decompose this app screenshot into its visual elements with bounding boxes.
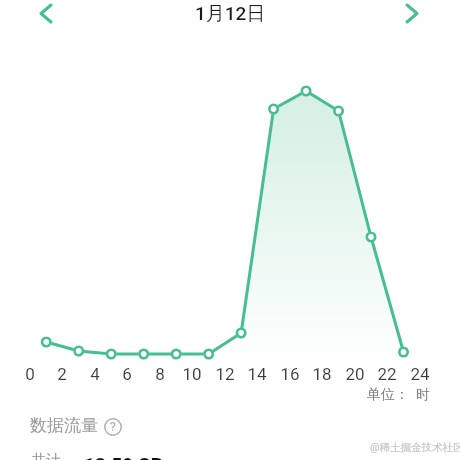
- staticText: 8: [155, 364, 165, 384]
- staticText: 单位： 时: [367, 386, 430, 404]
- button[interactable]: 数据流量: [30, 415, 118, 436]
- staticText: ?: [110, 420, 116, 434]
- staticText: 12: [215, 364, 235, 384]
- staticText: 0: [25, 364, 35, 384]
- button[interactable]: [394, 0, 430, 26]
- staticText: 4: [90, 364, 100, 384]
- staticText: 20: [345, 364, 365, 384]
- staticText: 1月12日: [195, 2, 266, 26]
- staticText: 共计: [31, 451, 61, 460]
- staticText: 13.59 GB: [84, 453, 163, 460]
- staticText: 10: [182, 364, 202, 384]
- staticText: 6: [122, 364, 132, 384]
- staticText: 2: [57, 364, 67, 384]
- button[interactable]: [28, 0, 64, 26]
- staticText: 22: [377, 364, 397, 384]
- staticText: 18: [312, 364, 332, 384]
- staticText: 24: [410, 364, 430, 384]
- staticText: 数据流量: [30, 415, 98, 436]
- staticText: 16: [280, 364, 300, 384]
- staticText: 14: [247, 364, 267, 384]
- staticText: @稀土掘金技术社区: [370, 441, 460, 454]
